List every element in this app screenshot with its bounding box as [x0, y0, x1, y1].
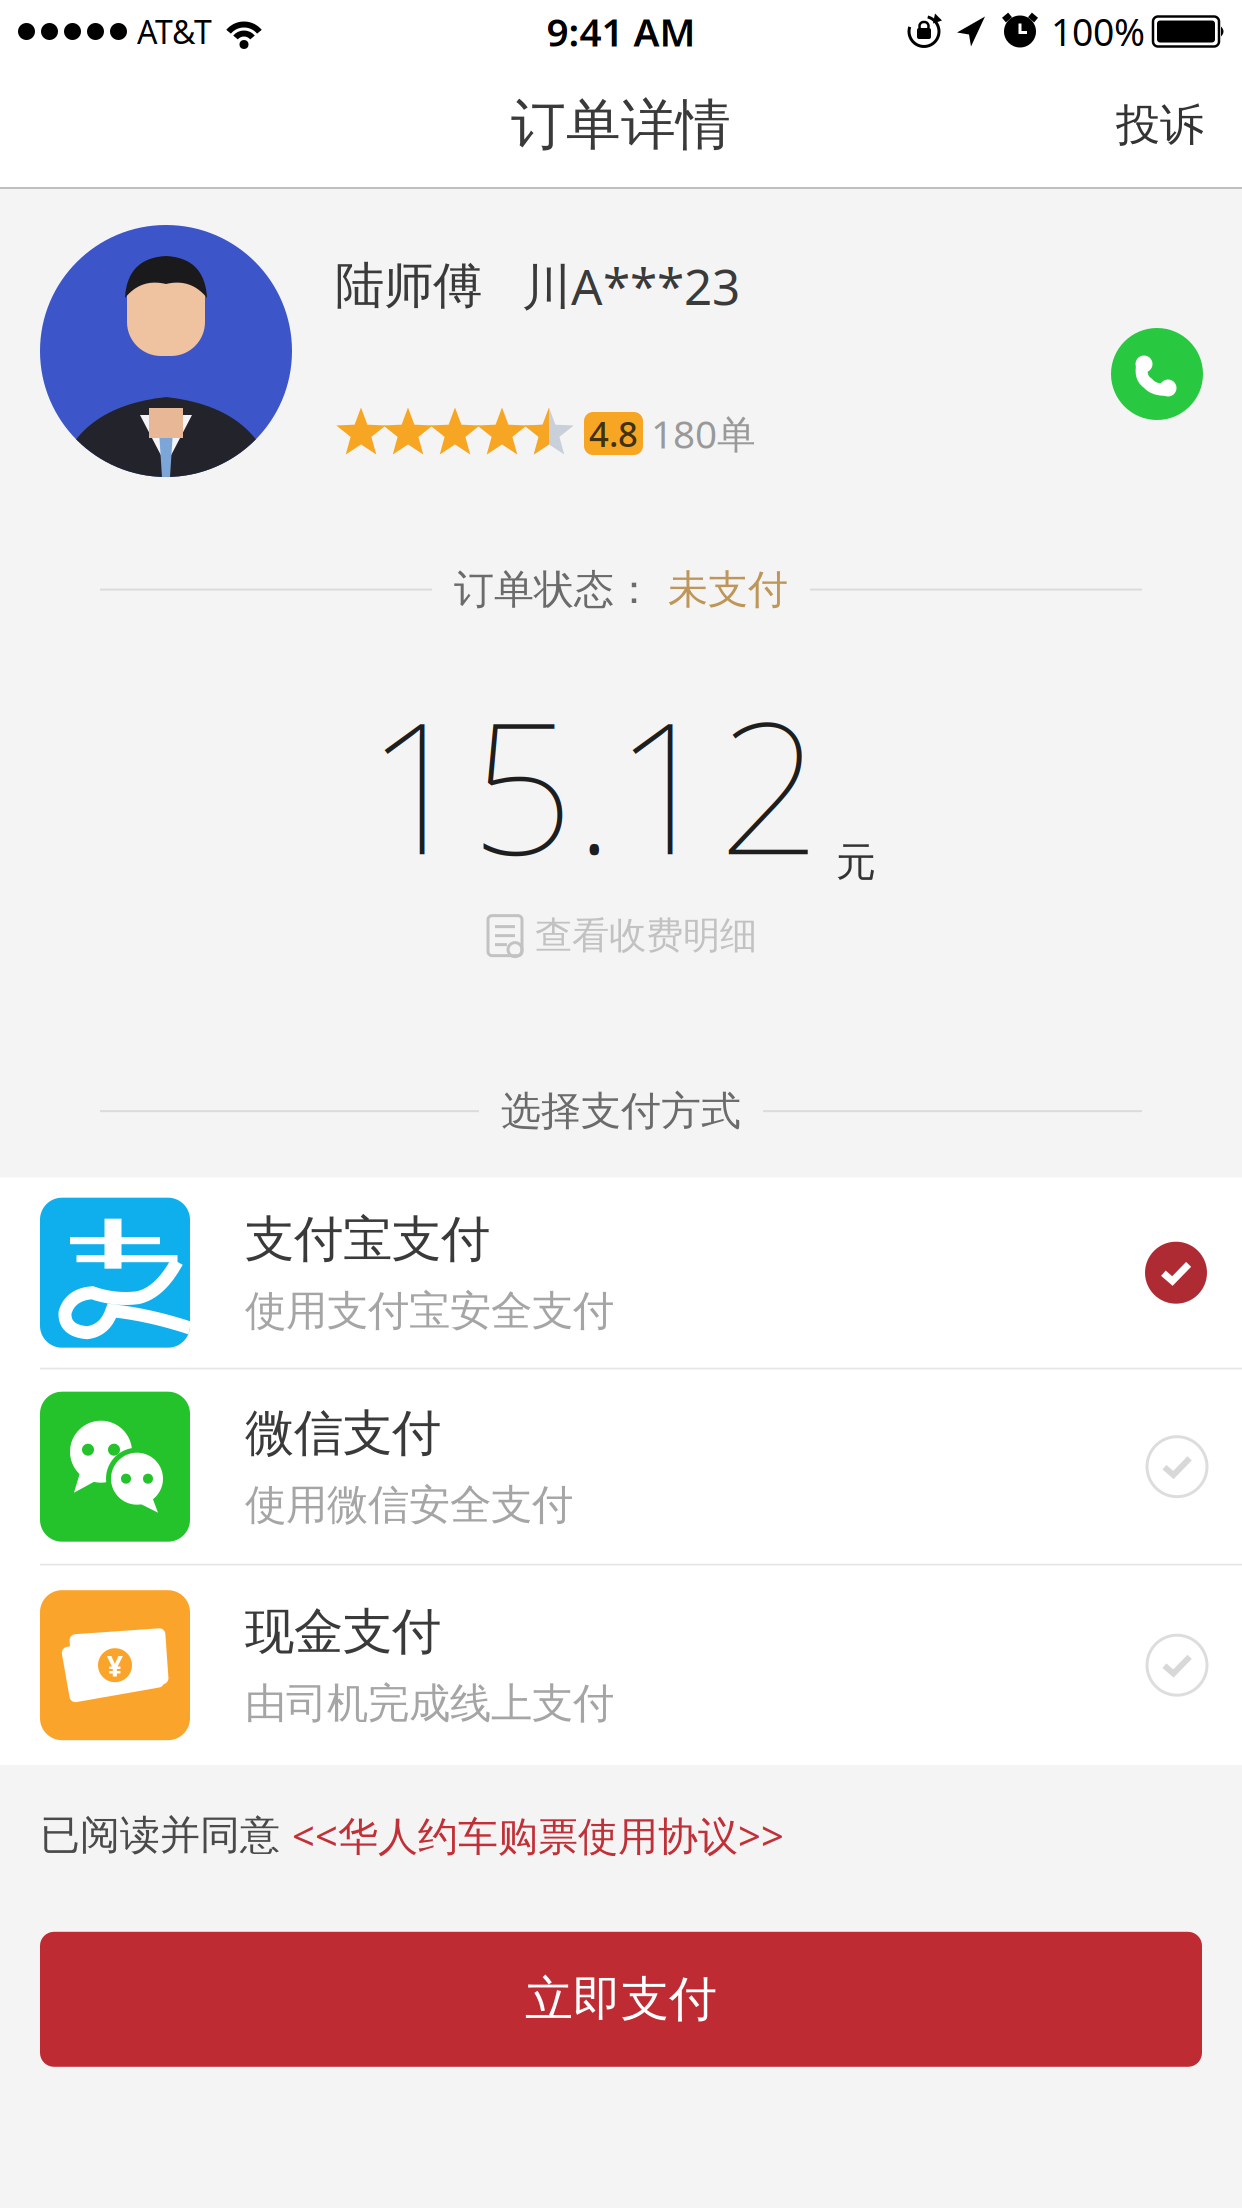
staticText: 支付宝支付: [245, 1209, 490, 1270]
staticText: ¥: [106, 1646, 123, 1685]
staticText: 投诉: [1116, 98, 1204, 152]
staticText: 15.12: [366, 662, 822, 905]
staticText: <<华人约车购票使用协议>>: [292, 1809, 784, 1862]
button[interactable]: 支付宝支付: [0, 1178, 1242, 1368]
staticText: 陆师傅: [335, 255, 482, 316]
staticText: 已阅读并同意: [40, 1811, 292, 1860]
staticText: 订单状态：: [454, 565, 654, 614]
staticText: 微信支付: [245, 1403, 441, 1464]
staticText: 元: [836, 838, 876, 887]
staticText: 100%: [1051, 7, 1145, 56]
button[interactable]: 拨打司机电话: [1111, 328, 1203, 420]
staticText: 180单: [651, 408, 756, 459]
staticText: 由司机完成线上支付: [245, 1678, 614, 1729]
staticText: 选择支付方式: [501, 1087, 741, 1136]
staticText: 未支付: [668, 565, 788, 614]
button[interactable]: 查看收费明细: [485, 913, 757, 959]
button[interactable]: 微信支付: [0, 1370, 1242, 1564]
staticText: 使用支付宝安全支付: [245, 1286, 614, 1336]
button[interactable]: 投诉: [1116, 98, 1204, 152]
staticText: 使用微信安全支付: [245, 1480, 573, 1530]
button[interactable]: 立即支付: [40, 1932, 1202, 2067]
staticText: 4.8: [589, 410, 638, 456]
staticText: 查看收费明细: [535, 913, 757, 959]
staticText: 现金支付: [245, 1601, 441, 1662]
staticText: 订单详情: [511, 91, 731, 158]
button[interactable]: <<华人约车购票使用协议>>: [292, 1809, 784, 1862]
staticText: 川A***23: [522, 253, 740, 318]
staticText: 9:41 AM: [546, 6, 695, 57]
staticText: 立即支付: [525, 1970, 717, 2029]
staticText: AT&T: [137, 10, 212, 53]
button[interactable]: ¥: [0, 1566, 1242, 1765]
